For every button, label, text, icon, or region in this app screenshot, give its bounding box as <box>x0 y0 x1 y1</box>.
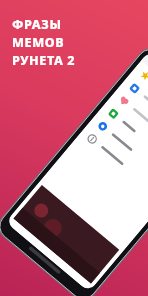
button[interactable]: ФРАЗЫ <box>12 16 76 69</box>
staticText: РУНЕТА 2 <box>12 52 76 69</box>
staticText: ФРАЗЫ <box>12 16 62 33</box>
button[interactable] <box>0 0 148 296</box>
staticText: МЕМОВ <box>12 34 65 51</box>
